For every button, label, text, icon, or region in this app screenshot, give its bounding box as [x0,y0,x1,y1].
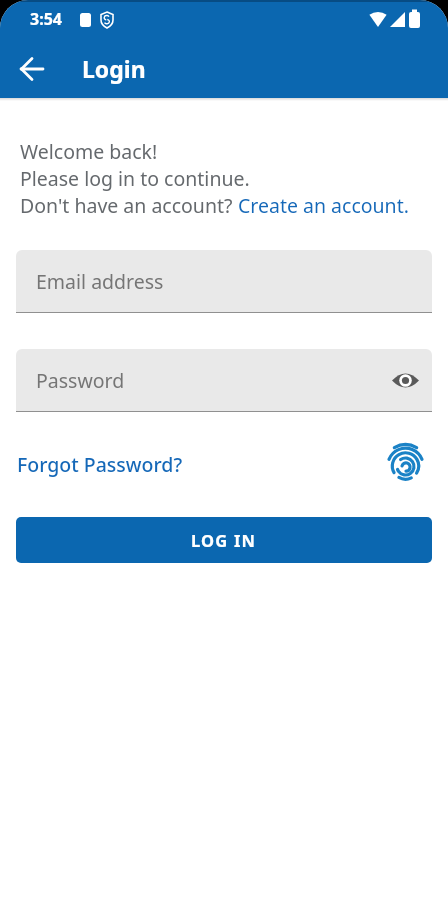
button[interactable]: Email address [16,250,432,313]
button[interactable] [381,440,430,489]
staticText: Email address [36,268,164,295]
button[interactable]: Password [16,349,432,412]
button[interactable]: Create an account. [238,192,409,219]
staticText: Please log in to continue. [20,165,250,192]
staticText: Welcome back! [20,138,158,165]
staticText: Don't have an account? [20,192,238,219]
staticText: 3:54 [30,8,62,30]
staticText: Login [82,53,146,84]
button[interactable] [10,47,54,91]
button[interactable]: LOG IN [16,517,432,563]
button[interactable]: Forgot Password? [17,451,183,478]
staticText: Password [36,367,125,394]
staticText: LOG IN [191,529,257,551]
